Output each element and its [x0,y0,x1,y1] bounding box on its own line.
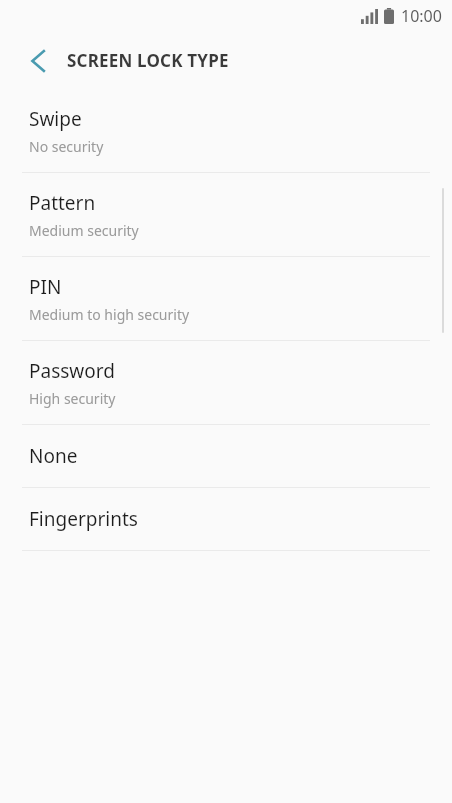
staticText: Swipe [29,106,82,132]
staticText: None [29,443,78,469]
staticText: High security [29,389,116,408]
staticText: Password [29,358,115,384]
button[interactable]: PIN [0,257,452,340]
button[interactable]: Swipe [0,89,452,172]
button[interactable]: Password [0,341,452,424]
button[interactable]: None [0,425,452,487]
staticText: Fingerprints [29,506,138,532]
staticText: Medium to high security [29,305,190,324]
button[interactable]: Pattern [0,173,452,256]
button[interactable]: Navigate up [14,37,62,85]
staticText: 10:00 [401,5,442,27]
staticText: Pattern [29,190,96,216]
staticText: Medium security [29,221,139,240]
button[interactable]: Fingerprints [0,488,452,550]
staticText: No security [29,137,104,156]
staticText: SCREEN LOCK TYPE [67,49,229,72]
staticText: PIN [29,274,62,300]
